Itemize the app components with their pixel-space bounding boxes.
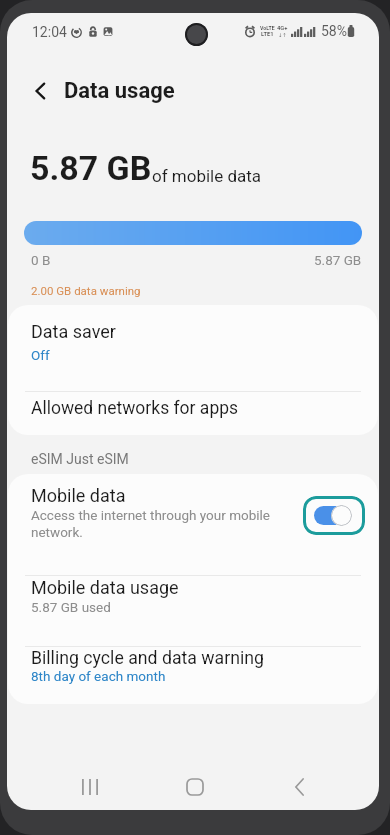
staticText: VoLTE [260, 25, 275, 31]
staticText: 8th day of each month [31, 668, 166, 684]
staticText: Data usage [64, 78, 175, 104]
staticText: Data saver [31, 321, 116, 342]
staticText: ↓↑ [278, 32, 287, 38]
staticText: Billing cycle and data warning [31, 648, 264, 669]
staticText: 5.87 GB [314, 252, 362, 268]
staticText: Mobile data [31, 485, 126, 506]
button[interactable] [8, 474, 378, 575]
button[interactable] [8, 647, 378, 704]
staticText: Allowed networks for apps [31, 398, 239, 419]
button[interactable]: Recent apps [67, 764, 112, 809]
button[interactable] [8, 576, 378, 646]
staticText: 4G+ [277, 25, 288, 32]
staticText: 5.87 GB used [31, 599, 111, 615]
staticText: 2.00 GB data warning [31, 284, 141, 297]
button[interactable]: Navigate up [21, 71, 61, 111]
button[interactable]: Back [277, 764, 322, 809]
button[interactable] [8, 392, 378, 435]
staticText: Off [31, 347, 50, 363]
staticText: Access the internet through your mobile … [31, 507, 281, 541]
staticText: eSIM Just eSIM [31, 451, 129, 467]
button[interactable] [8, 305, 378, 391]
staticText: 5.87 GB [30, 149, 152, 189]
staticText: Mobile data usage [31, 577, 179, 598]
staticText: 12:04 [32, 24, 67, 40]
staticText: of mobile data [152, 166, 262, 186]
staticText: LTE1 [261, 31, 274, 38]
staticText: 58% [321, 23, 347, 39]
button[interactable]: Mobile data toggle [303, 496, 365, 535]
button[interactable]: Home [172, 764, 217, 809]
staticText: 0 B [31, 252, 51, 268]
